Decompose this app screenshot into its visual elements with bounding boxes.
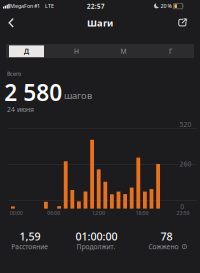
staticText: 1,59 <box>19 229 40 243</box>
staticText: 06:00 <box>47 209 60 217</box>
staticText: 260 <box>179 159 191 168</box>
staticText: 0 <box>180 202 184 211</box>
button[interactable]: Back <box>0 0 200 273</box>
staticText: Всего <box>7 70 21 77</box>
button[interactable]: М <box>0 0 200 273</box>
staticText: шагов <box>64 89 92 101</box>
staticText: MegaFon #1 <box>10 2 40 9</box>
staticText: 00:00 <box>10 209 23 217</box>
staticText: 2 580 <box>4 77 62 107</box>
staticText: 01:00:00 <box>75 229 117 243</box>
staticText: LTE <box>45 2 54 9</box>
staticText: 18:00 <box>135 209 148 217</box>
staticText: Д <box>24 47 29 56</box>
staticText: Н <box>74 47 79 56</box>
button[interactable]: Д <box>0 0 200 273</box>
staticText: 20 % <box>160 2 171 9</box>
staticText: Г <box>169 47 172 56</box>
button[interactable]: Г <box>0 0 200 273</box>
staticText: 24 июня <box>7 105 34 114</box>
button[interactable]: Н <box>0 0 200 273</box>
staticText: 78 <box>160 229 172 243</box>
staticText: Шаги <box>87 17 113 29</box>
button[interactable]: Share <box>0 0 200 273</box>
staticText: Расстояние <box>11 242 48 251</box>
staticText: Продолжит. <box>76 242 115 251</box>
staticText: ? <box>183 244 185 249</box>
staticText: 520 <box>179 120 191 129</box>
staticText: 23:59 <box>176 209 189 217</box>
staticText: 12:00 <box>92 209 105 217</box>
staticText: Сожжено <box>148 242 178 251</box>
staticText: 22:57 <box>87 2 105 11</box>
staticText: М <box>120 47 126 56</box>
